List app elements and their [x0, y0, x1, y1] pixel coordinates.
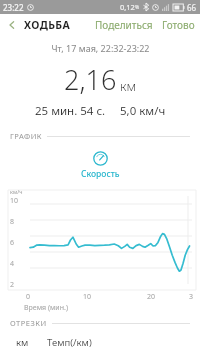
staticText: 2	[10, 280, 15, 290]
staticText: км	[120, 77, 137, 95]
staticText: км/ч	[10, 188, 23, 195]
staticText: 2,16	[64, 61, 117, 98]
button[interactable]: Готово	[159, 15, 198, 35]
button[interactable]: Скорость	[0, 151, 200, 180]
staticText: 23:22	[3, 2, 24, 13]
staticText: Готово	[162, 18, 195, 32]
staticText: Скорость	[81, 168, 120, 180]
staticText: %	[135, 4, 140, 11]
staticText: Поделиться	[95, 18, 153, 32]
staticText: 8	[10, 217, 15, 227]
staticText: Темп(/км)	[47, 336, 92, 349]
staticText: 66	[187, 2, 197, 13]
staticText: ГРАФИК	[10, 131, 42, 141]
staticText: 10	[10, 196, 19, 206]
staticText: Чт, 17 мая, 22:32-23:22	[51, 42, 150, 54]
staticText: км	[16, 336, 29, 349]
staticText: Время (мин.)	[24, 303, 68, 313]
staticText: 25 мин. 54 с.	[35, 103, 106, 119]
staticText: 6	[10, 238, 15, 248]
staticText: ХОДЬБА	[24, 18, 71, 32]
staticText: 3	[189, 292, 194, 302]
staticText: 0	[26, 292, 31, 302]
staticText: 0,12	[120, 2, 135, 12]
button[interactable]: Поделиться	[92, 15, 156, 35]
staticText: 10	[83, 292, 92, 302]
staticText: 20	[147, 292, 156, 302]
staticText: 5,0 км/ч	[120, 103, 166, 119]
staticText: ОТРЕЗКИ	[10, 318, 47, 328]
staticText: 4	[10, 259, 15, 269]
button[interactable]: Back	[0, 14, 24, 36]
